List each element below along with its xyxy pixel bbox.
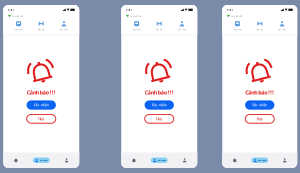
button[interactable]: Kết thúc (271, 21, 293, 31)
button[interactable]: Tài khoản (54, 158, 79, 162)
button[interactable]: Trang chủ (222, 158, 247, 162)
staticText: Thư viện (15, 28, 23, 31)
button[interactable]: Trang chủ (121, 158, 146, 162)
button[interactable]: Xác nhận (27, 100, 56, 110)
staticText: Cảnh báo !!! (27, 89, 56, 96)
staticText: Báo động (258, 159, 266, 162)
button[interactable]: Tài khoản (172, 158, 197, 162)
button[interactable]: Thư viện (7, 21, 30, 31)
button[interactable]: Trang chủ (3, 158, 28, 162)
staticText: Kết nối (156, 28, 163, 31)
staticText: Báo động (157, 159, 165, 162)
staticText: 9:41 (227, 8, 234, 12)
staticText: 9:41 (8, 8, 15, 12)
staticText: Kết thúc (60, 28, 68, 31)
button[interactable]: Kết nối (30, 21, 53, 31)
staticText: Thư viện (133, 28, 141, 31)
button[interactable]: Kết thúc (53, 21, 75, 31)
staticText: Kết thúc (178, 28, 186, 31)
staticText: Xác nhận (34, 103, 49, 107)
button[interactable]: Kết thúc (171, 21, 193, 31)
button[interactable]: Tài khoản (272, 158, 297, 162)
button[interactable]: Thư viện (226, 21, 248, 31)
staticText: Huỷ (156, 117, 162, 121)
staticText: Đã kết nối (130, 14, 141, 17)
staticText: Xác nhận (152, 103, 167, 107)
staticText: Đã kết nối (12, 14, 23, 17)
staticText: Báo động (39, 159, 47, 162)
staticText: Thư viện (233, 28, 241, 31)
staticText: Huỷ (38, 117, 44, 121)
button[interactable]: Kết nối (249, 21, 271, 31)
staticText: Cảnh báo !!! (145, 89, 174, 96)
staticText: Huỷ (257, 117, 263, 121)
button[interactable]: Huỷ (245, 114, 274, 123)
button[interactable]: Huỷ (145, 114, 174, 123)
button[interactable]: Xác nhận (145, 100, 174, 110)
button[interactable]: Báo động (147, 158, 172, 163)
button[interactable]: Huỷ (27, 114, 56, 123)
button[interactable]: Báo động (29, 158, 54, 163)
button[interactable]: Thư viện (125, 21, 148, 31)
staticText: Đã kết nối (231, 14, 242, 17)
staticText: Kết thúc (278, 28, 286, 31)
button[interactable]: Báo động (247, 158, 272, 163)
staticText: Kết nối (38, 28, 45, 31)
button[interactable]: Kết nối (148, 21, 171, 31)
button[interactable]: Xác nhận (245, 100, 274, 110)
staticText: Kết nối (256, 28, 263, 31)
staticText: 9:41 (126, 8, 133, 12)
staticText: Cảnh báo !!! (245, 89, 274, 96)
staticText: Xác nhận (252, 103, 267, 107)
